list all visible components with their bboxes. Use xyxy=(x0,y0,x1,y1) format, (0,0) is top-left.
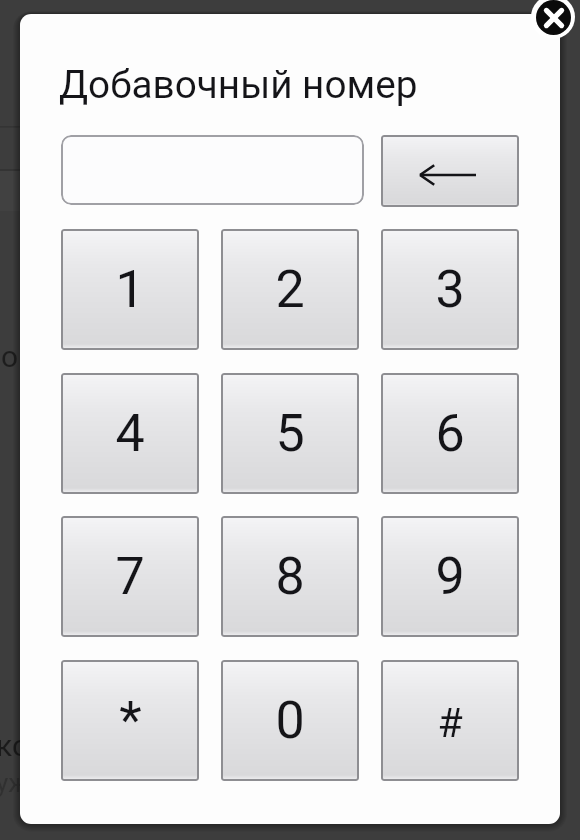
button[interactable]: * xyxy=(61,660,199,781)
button[interactable]: 5 xyxy=(221,373,359,494)
button[interactable]: 3 xyxy=(381,229,519,350)
staticText: 6 xyxy=(435,403,465,464)
staticText: 2 xyxy=(275,259,305,320)
staticText: 4 xyxy=(115,403,145,464)
button[interactable]: 9 xyxy=(381,516,519,637)
staticText: 8 xyxy=(275,546,305,607)
staticText: 1 xyxy=(115,259,145,320)
staticText: уж xyxy=(0,768,29,798)
staticText: 9 xyxy=(435,546,465,607)
staticText: о xyxy=(1,339,19,374)
button[interactable]: 0 xyxy=(221,660,359,781)
staticText: * xyxy=(119,690,142,751)
button[interactable]: 4 xyxy=(61,373,199,494)
button[interactable]: 1 xyxy=(61,229,199,350)
button[interactable]: 6 xyxy=(381,373,519,494)
staticText: Добавочный номер xyxy=(59,62,418,107)
staticText: 0 xyxy=(275,690,305,751)
staticText: 3 xyxy=(435,259,465,320)
button[interactable]: Backspace xyxy=(381,135,519,207)
button[interactable]: # xyxy=(381,660,519,781)
button[interactable]: Close xyxy=(531,0,575,39)
staticText: # xyxy=(437,699,463,747)
staticText: ко xyxy=(0,728,30,763)
button[interactable]: Extension number input xyxy=(61,135,364,205)
staticText: 5 xyxy=(275,403,305,464)
button[interactable]: 8 xyxy=(221,516,359,637)
button[interactable]: 7 xyxy=(61,516,199,637)
staticText: 7 xyxy=(115,546,145,607)
button[interactable]: 2 xyxy=(221,229,359,350)
